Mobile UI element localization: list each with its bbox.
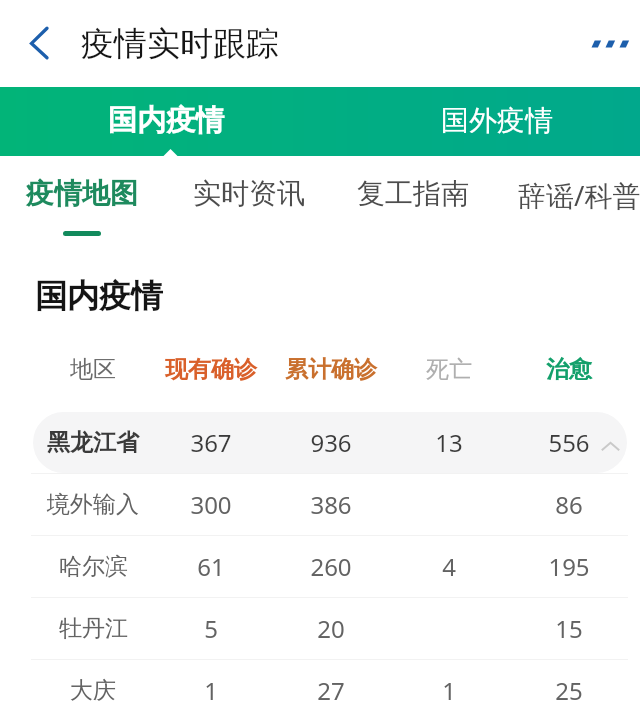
staticText: 15 <box>555 612 583 645</box>
button[interactable]: 辞谣/科普 <box>504 156 640 224</box>
staticText: 556 <box>548 426 590 459</box>
staticText: 25 <box>555 674 583 707</box>
staticText: 260 <box>310 550 352 583</box>
staticText: 86 <box>555 488 583 521</box>
staticText: 哈尔滨 <box>59 552 128 581</box>
staticText: 300 <box>190 488 232 521</box>
button[interactable]: Back <box>15 18 63 66</box>
button[interactable]: More options <box>585 20 633 68</box>
staticText: 1 <box>442 674 456 707</box>
staticText: 境外输入 <box>47 490 139 519</box>
button[interactable]: 大庆 <box>0 659 640 718</box>
staticText: 386 <box>310 488 352 521</box>
staticText: 国内疫情 <box>35 276 163 316</box>
staticText: 累计确诊 <box>285 355 377 384</box>
staticText: 死亡 <box>426 355 472 384</box>
staticText: 936 <box>310 426 352 459</box>
button[interactable]: 死亡 <box>374 348 524 390</box>
button[interactable]: 地区 <box>18 348 168 390</box>
button[interactable]: 黑龙江省 <box>0 411 640 473</box>
staticText: 实时资讯 <box>193 176 305 211</box>
staticText: 黑龙江省 <box>47 428 139 457</box>
staticText: 4 <box>442 550 456 583</box>
staticText: 国外疫情 <box>441 103 553 138</box>
staticText: 5 <box>204 612 218 645</box>
button[interactable]: 现有确诊 <box>136 348 286 390</box>
staticText: 现有确诊 <box>165 355 257 384</box>
staticText: 61 <box>197 550 225 583</box>
staticText: 1 <box>204 674 218 707</box>
button[interactable]: 国外疫情 <box>386 87 640 156</box>
staticText: 13 <box>435 426 463 459</box>
staticText: 367 <box>190 426 232 459</box>
button[interactable]: 国内疫情 <box>0 87 386 156</box>
button[interactable]: 复工指南 <box>343 156 497 224</box>
staticText: 疫情地图 <box>26 176 138 211</box>
button[interactable]: 疫情地图 <box>12 156 172 224</box>
button[interactable]: 实时资讯 <box>179 156 336 224</box>
staticText: 辞谣/科普 <box>518 176 640 214</box>
button[interactable]: 牡丹江 <box>0 597 640 659</box>
button[interactable]: 累计确诊 <box>256 348 406 390</box>
staticText: 地区 <box>70 355 116 384</box>
button[interactable]: 境外输入 <box>0 473 640 535</box>
staticText: 大庆 <box>70 676 116 705</box>
staticText: 国内疫情 <box>108 102 224 139</box>
button[interactable]: 治愈 <box>494 348 640 390</box>
staticText: 疫情实时跟踪 <box>81 23 279 65</box>
button[interactable]: 哈尔滨 <box>0 535 640 597</box>
staticText: 治愈 <box>546 355 592 384</box>
staticText: 27 <box>317 674 345 707</box>
staticText: 牡丹江 <box>59 614 128 643</box>
staticText: 195 <box>548 550 590 583</box>
staticText: 复工指南 <box>357 176 469 211</box>
staticText: 20 <box>317 612 345 645</box>
